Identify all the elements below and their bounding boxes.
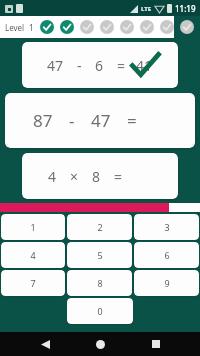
staticText: =: [117, 56, 126, 75]
button[interactable]: Task 5: [120, 20, 134, 34]
button[interactable]: 4: [1, 242, 65, 268]
staticText: 11:19: [175, 3, 196, 14]
button[interactable]: Home: [89, 333, 111, 355]
button[interactable]: 6: [134, 242, 199, 268]
staticText: 8: [97, 277, 103, 289]
staticText: =: [127, 109, 137, 132]
button[interactable]: Task 4: [100, 20, 114, 34]
staticText: 6: [95, 56, 104, 75]
staticText: 3: [164, 221, 170, 233]
staticText: 4: [30, 249, 36, 261]
button[interactable]: 0: [67, 298, 133, 324]
staticText: 1: [29, 22, 34, 33]
button[interactable]: 8: [67, 270, 132, 296]
button[interactable]: 9: [134, 270, 199, 296]
staticText: 5: [97, 249, 103, 261]
button[interactable]: 3: [134, 214, 199, 240]
button[interactable]: Recents: [145, 333, 167, 355]
button[interactable]: Task 8: [180, 20, 194, 34]
button[interactable]: 1: [1, 214, 65, 240]
staticText: 8: [92, 167, 101, 186]
button[interactable]: 5: [67, 242, 132, 268]
button[interactable]: Level: [0, 22, 37, 33]
staticText: LTE: [141, 5, 152, 13]
staticText: -: [69, 109, 75, 132]
staticText: 9: [164, 277, 170, 289]
staticText: 7: [30, 277, 36, 289]
staticText: ×: [70, 167, 79, 186]
button[interactable]: Task 1: [40, 20, 54, 34]
button[interactable]: Task 7: [160, 20, 174, 34]
staticText: 47: [91, 109, 111, 132]
button[interactable]: Task 3: [80, 20, 94, 34]
button[interactable]: 87: [5, 93, 195, 148]
button[interactable]: 7: [1, 270, 65, 296]
button[interactable]: 2: [67, 214, 132, 240]
button[interactable]: 47: [22, 42, 178, 88]
button[interactable]: Task 2: [60, 20, 74, 34]
staticText: 1: [30, 221, 36, 233]
staticText: =: [114, 167, 123, 186]
staticText: 47: [47, 56, 64, 75]
button[interactable]: Back: [34, 333, 56, 355]
button[interactable]: Task 6: [140, 20, 154, 34]
staticText: 41: [136, 56, 153, 75]
staticText: 6: [164, 249, 170, 261]
staticText: -: [77, 56, 82, 75]
button[interactable]: 4: [22, 153, 178, 199]
staticText: 87: [33, 109, 53, 132]
staticText: Level: [5, 22, 25, 33]
staticText: 0: [97, 305, 103, 317]
staticText: 2: [97, 221, 103, 233]
staticText: 4: [48, 167, 57, 186]
